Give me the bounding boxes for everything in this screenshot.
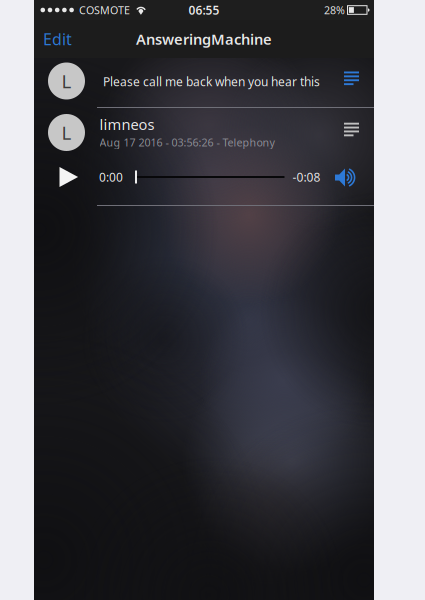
staticText: AnsweringMachine bbox=[136, 29, 272, 49]
staticText: L bbox=[61, 120, 71, 145]
staticText: L bbox=[61, 69, 71, 93]
staticText: Aug 17 2016 - 03:56:26 - Telephony bbox=[99, 135, 274, 149]
staticText: Please call me back when you hear this bbox=[103, 73, 320, 89]
staticText: 06:55 bbox=[188, 2, 219, 18]
staticText: COSMOTE bbox=[79, 3, 130, 17]
staticText: limneos bbox=[99, 115, 154, 134]
button[interactable]: L bbox=[34, 58, 374, 107]
button[interactable]: Play bbox=[49, 157, 88, 197]
button[interactable]: L bbox=[34, 108, 374, 156]
staticText: 28% bbox=[324, 3, 345, 17]
button[interactable]: Volume bbox=[327, 158, 365, 197]
button[interactable]: Edit bbox=[35, 20, 80, 58]
staticText: 0:00 bbox=[99, 169, 123, 185]
staticText: -0:08 bbox=[292, 169, 320, 185]
staticText: Edit bbox=[43, 28, 72, 50]
